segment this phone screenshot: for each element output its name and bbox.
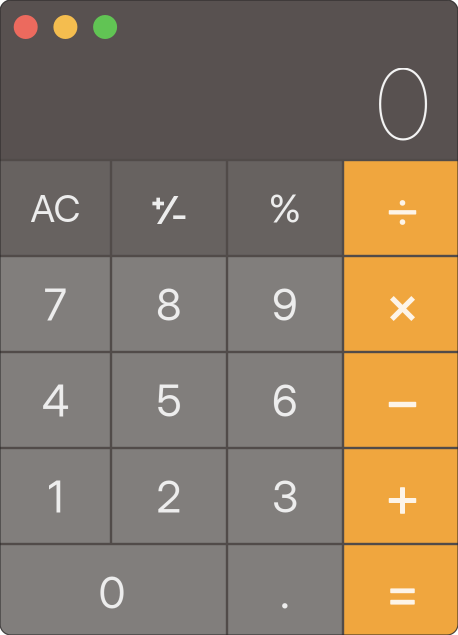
button[interactable]: Zoom: [93, 15, 117, 39]
button[interactable]: .: [227, 544, 343, 635]
button[interactable]: 6: [227, 352, 343, 448]
button[interactable]: Multiply: [343, 256, 458, 352]
button[interactable]: 0: [0, 544, 227, 635]
button[interactable]: 5: [111, 352, 227, 448]
staticText: %: [268, 185, 301, 232]
staticText: 8: [156, 278, 182, 331]
staticText: 0: [376, 45, 430, 163]
staticText: 2: [156, 470, 181, 523]
button[interactable]: Equals: [343, 544, 458, 635]
staticText: 7: [44, 278, 67, 331]
staticText: 1: [47, 470, 63, 523]
staticText: 6: [272, 374, 298, 427]
button[interactable]: 2: [111, 448, 227, 544]
staticText: 3: [272, 470, 298, 523]
button[interactable]: AC: [0, 160, 111, 256]
button[interactable]: 3: [227, 448, 343, 544]
button[interactable]: %: [227, 160, 343, 256]
button[interactable]: Minimise: [53, 15, 77, 39]
button[interactable]: Divide: [343, 160, 458, 256]
staticText: 9: [272, 278, 298, 331]
button[interactable]: Subtract: [343, 352, 458, 448]
button[interactable]: 9: [227, 256, 343, 352]
staticText: 5: [156, 374, 181, 427]
staticText: AC: [30, 186, 80, 231]
button[interactable]: Plus minus: [111, 160, 227, 256]
staticText: .: [280, 566, 290, 619]
staticText: 0: [98, 566, 125, 619]
button[interactable]: 4: [0, 352, 111, 448]
button[interactable]: Add: [343, 448, 458, 544]
button[interactable]: 8: [111, 256, 227, 352]
button[interactable]: 1: [0, 448, 111, 544]
staticText: 4: [42, 374, 69, 427]
button[interactable]: Close: [14, 15, 38, 39]
button[interactable]: 7: [0, 256, 111, 352]
